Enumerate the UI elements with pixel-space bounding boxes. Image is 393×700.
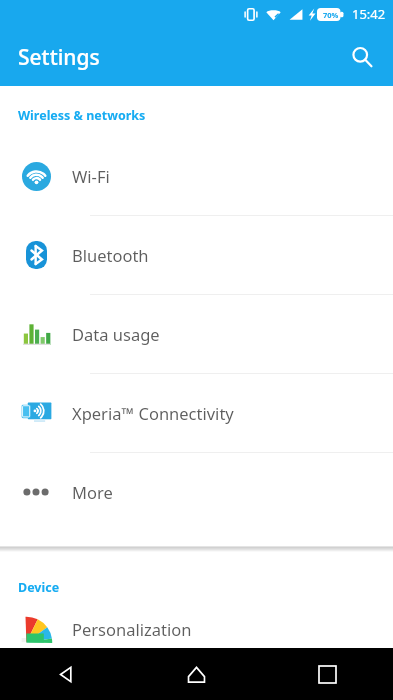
button[interactable]: More: [0, 453, 393, 531]
staticText: Xperia™ Connectivity: [72, 402, 234, 424]
button[interactable]: Wi-Fi: [0, 137, 393, 216]
button[interactable]: Personalization: [0, 609, 393, 648]
staticText: Bluetooth: [72, 244, 149, 266]
staticText: 70%: [323, 10, 339, 20]
button[interactable]: Search: [339, 34, 385, 80]
button[interactable]: Back: [0, 648, 131, 700]
staticText: More: [72, 481, 113, 503]
staticText: Wi-Fi: [72, 165, 110, 187]
button[interactable]: Data usage: [0, 295, 393, 374]
staticText: Wireless & networks: [18, 107, 146, 124]
staticText: 15:42: [352, 5, 386, 23]
staticText: Settings: [18, 43, 100, 72]
staticText: Device: [18, 579, 60, 596]
staticText: Data usage: [72, 323, 160, 345]
button[interactable]: Xperia™ Connectivity: [0, 374, 393, 453]
button[interactable]: Home: [131, 648, 262, 700]
button[interactable]: Bluetooth: [0, 216, 393, 295]
staticText: Personalization: [72, 618, 192, 640]
button[interactable]: Recents: [262, 648, 393, 700]
